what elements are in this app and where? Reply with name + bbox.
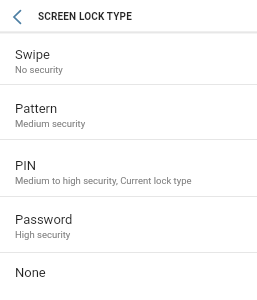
staticText: None bbox=[15, 265, 46, 280]
staticText: Swipe bbox=[15, 47, 50, 62]
button[interactable]: None bbox=[0, 253, 257, 300]
button[interactable]: Password bbox=[0, 197, 257, 252]
button[interactable]: Swipe bbox=[0, 34, 257, 84]
staticText: No security bbox=[15, 64, 63, 75]
button[interactable] bbox=[0, 3, 34, 31]
button[interactable]: PIN bbox=[0, 140, 257, 196]
staticText: SCREEN LOCK TYPE bbox=[38, 11, 132, 23]
staticText: High security bbox=[15, 229, 71, 240]
staticText: Medium to high security, Current lock ty… bbox=[15, 175, 192, 186]
staticText: PIN bbox=[15, 158, 37, 173]
staticText: Password bbox=[15, 212, 73, 227]
button[interactable]: Pattern bbox=[0, 85, 257, 139]
staticText: Pattern bbox=[15, 101, 58, 116]
staticText: Medium security bbox=[15, 118, 86, 129]
